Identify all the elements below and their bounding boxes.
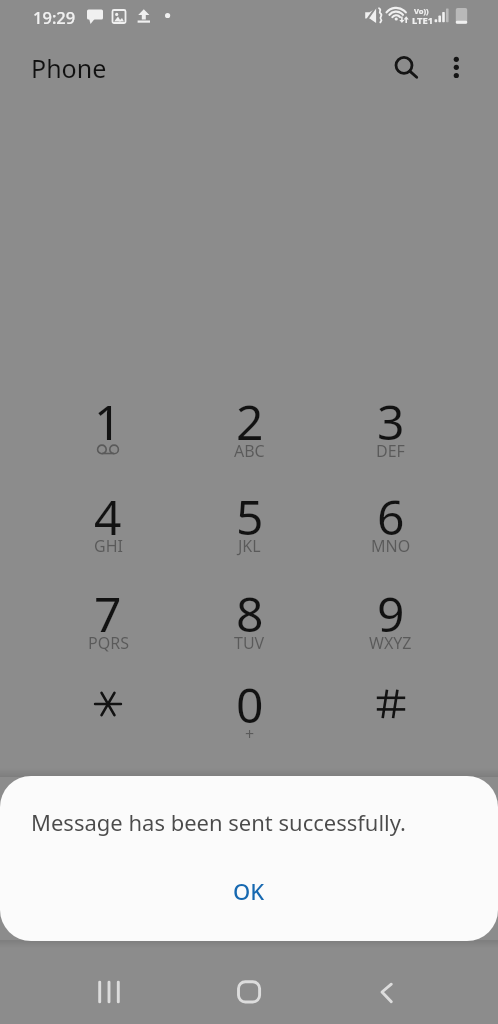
button[interactable]: 4 bbox=[37, 479, 179, 575]
staticText: WXYZ bbox=[369, 632, 412, 654]
staticText: MNO bbox=[371, 535, 411, 557]
staticText: Phone bbox=[31, 51, 107, 85]
staticText: Message has been sent successfully. bbox=[31, 807, 406, 837]
button[interactable]: 1 bbox=[37, 384, 179, 480]
button[interactable]: 3 bbox=[320, 384, 461, 480]
staticText: JKL bbox=[238, 535, 261, 557]
staticText: 9 bbox=[377, 581, 405, 646]
staticText: + bbox=[245, 723, 255, 745]
button[interactable]: Back bbox=[364, 968, 412, 1016]
staticText: 8 bbox=[236, 581, 264, 646]
staticText: 0 bbox=[236, 672, 264, 737]
button[interactable]: Recents bbox=[85, 968, 133, 1016]
staticText: TUV bbox=[234, 632, 265, 654]
button[interactable]: 2 bbox=[179, 384, 320, 480]
button[interactable] bbox=[37, 667, 179, 763]
staticText: Vo)) bbox=[414, 6, 429, 16]
button[interactable]: More options bbox=[434, 45, 478, 89]
staticText: 3 bbox=[377, 389, 405, 454]
staticText: GHI bbox=[94, 535, 123, 557]
staticText: DEF bbox=[376, 440, 405, 462]
staticText: PQRS bbox=[88, 632, 129, 654]
button[interactable]: Home bbox=[225, 968, 273, 1016]
button[interactable]: 5 bbox=[179, 479, 320, 575]
staticText: 5 bbox=[236, 484, 264, 549]
button[interactable]: 9 bbox=[320, 576, 461, 672]
staticText: 4 bbox=[94, 484, 122, 549]
button[interactable]: Search bbox=[382, 44, 426, 88]
staticText: 7 bbox=[94, 581, 122, 646]
button[interactable]: 6 bbox=[320, 479, 461, 575]
staticText: 19:29 bbox=[33, 6, 76, 28]
button[interactable]: 8 bbox=[179, 576, 320, 672]
staticText: 2 bbox=[236, 389, 264, 454]
staticText: LTE1 bbox=[412, 14, 434, 27]
button[interactable]: 0 bbox=[179, 667, 320, 763]
staticText: OK bbox=[233, 876, 265, 906]
staticText: ABC bbox=[234, 440, 265, 462]
staticText: 1 bbox=[94, 389, 122, 454]
button[interactable]: OK bbox=[193, 866, 305, 916]
button[interactable]: 7 bbox=[37, 576, 179, 672]
staticText: 6 bbox=[377, 484, 405, 549]
button[interactable] bbox=[320, 667, 461, 763]
